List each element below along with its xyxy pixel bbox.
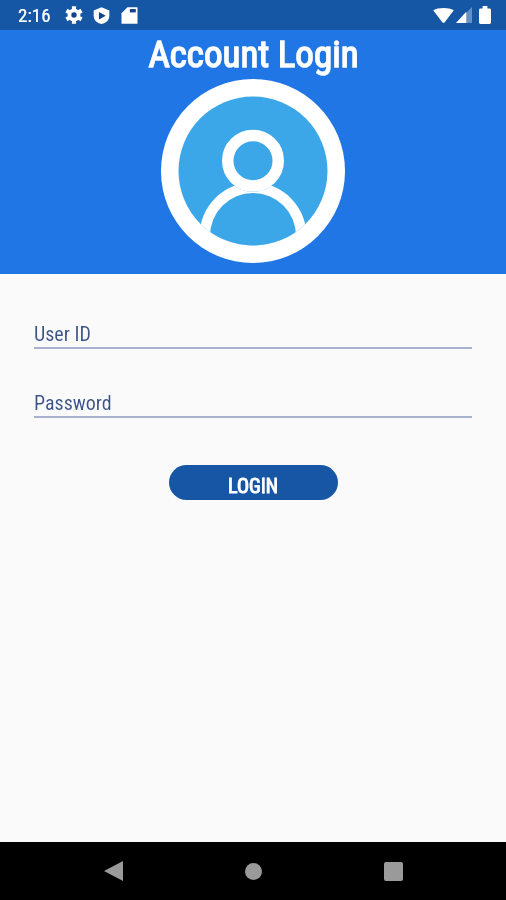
staticText: 2:16 — [18, 4, 51, 26]
button[interactable]: User ID — [34, 322, 472, 349]
button[interactable]: Recent apps — [323, 842, 463, 900]
button[interactable]: LOGIN — [169, 465, 338, 500]
button[interactable]: Password — [34, 391, 472, 418]
button[interactable]: Home — [183, 842, 323, 900]
button[interactable]: Back — [43, 842, 183, 900]
staticText: Account Login — [148, 33, 359, 76]
staticText: LOGIN — [228, 474, 279, 497]
staticText: User ID — [34, 322, 91, 345]
staticText: Password — [34, 391, 112, 414]
